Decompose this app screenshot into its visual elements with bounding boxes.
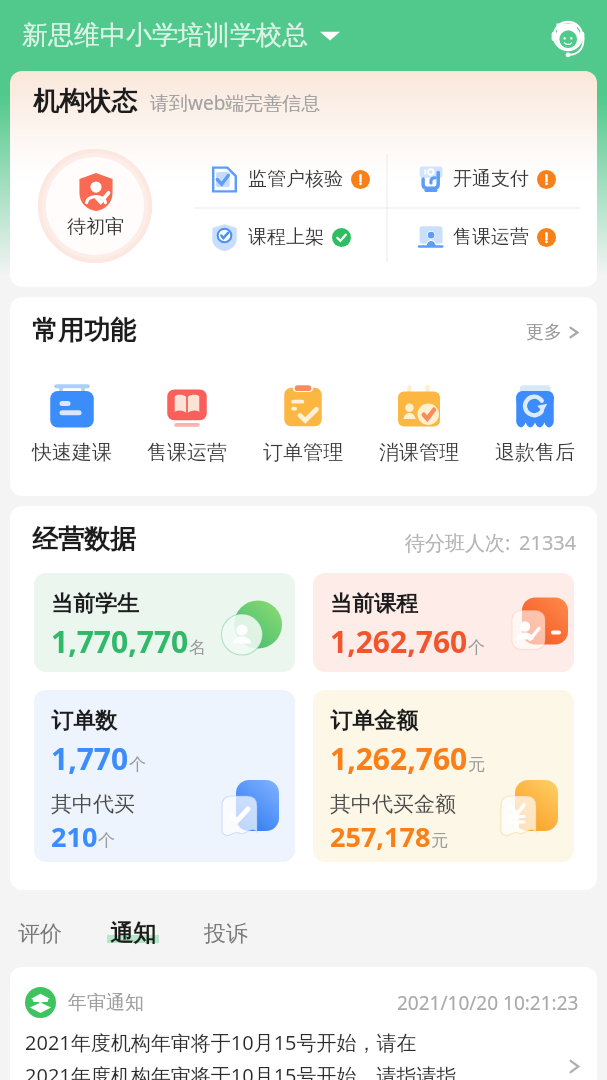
- button[interactable]: Customer service: [545, 13, 591, 59]
- staticText: 1,262,760: [330, 738, 468, 779]
- staticText: 其中代买: [51, 791, 135, 817]
- staticText: 元: [468, 754, 485, 775]
- staticText: 开通支付: [453, 167, 529, 191]
- staticText: 当前课程: [330, 590, 418, 618]
- staticText: 年审通知: [68, 991, 144, 1015]
- staticText: 通知: [110, 919, 156, 948]
- staticText: 快速建课: [32, 440, 112, 465]
- staticText: 请到web端完善信息: [150, 90, 321, 116]
- button[interactable]: 评价: [8, 908, 72, 960]
- button[interactable]: 通知: [97, 907, 169, 960]
- staticText: 210: [51, 818, 98, 855]
- staticText: 消课管理: [379, 440, 459, 465]
- button[interactable]: 退款售后: [477, 381, 593, 465]
- button[interactable]: 订单金额: [313, 690, 574, 862]
- staticText: 1,770: [51, 738, 129, 779]
- button[interactable]: 当前课程: [313, 573, 574, 672]
- staticText: 其中代买金额: [330, 791, 456, 817]
- staticText: 21334: [519, 529, 577, 556]
- staticText: 个: [468, 637, 485, 658]
- staticText: 订单金额: [330, 707, 418, 735]
- staticText: 监管户核验: [248, 167, 343, 191]
- staticText: 当前学生: [51, 590, 139, 618]
- staticText: 订单管理: [263, 440, 343, 465]
- staticText: 投诉: [204, 920, 248, 948]
- button[interactable]: 快速建课: [14, 381, 129, 465]
- staticText: 评价: [18, 920, 62, 948]
- staticText: 订单数: [51, 707, 117, 735]
- staticText: 个: [98, 830, 115, 851]
- button[interactable]: 待初审: [38, 149, 152, 263]
- staticText: 退款售后: [495, 440, 575, 465]
- staticText: 1,770,770: [51, 621, 189, 662]
- button[interactable]: 订单数: [34, 690, 295, 862]
- button[interactable]: 售课运营: [391, 208, 597, 266]
- staticText: 1,262,760: [330, 621, 468, 662]
- button[interactable]: 监管户核验: [186, 150, 391, 208]
- staticText: 机构状态: [33, 85, 137, 118]
- staticText: 经营数据: [32, 523, 136, 556]
- button[interactable]: 订单管理: [245, 381, 361, 465]
- staticText: 售课运营: [453, 225, 529, 249]
- staticText: 257,178: [330, 818, 431, 855]
- button[interactable]: 售课运营: [129, 381, 245, 465]
- staticText: 待初审: [67, 215, 124, 239]
- button[interactable]: 更多: [526, 319, 579, 342]
- staticText: 2021年度机构年审将于10月15号开始，请指请指: [25, 1062, 457, 1080]
- button[interactable]: 课程上架: [186, 208, 391, 266]
- button[interactable]: 年审通知: [10, 967, 597, 1080]
- button[interactable]: 投诉: [194, 908, 258, 960]
- staticText: 新思维中小学培训学校总: [22, 19, 308, 52]
- staticText: 待分班人次:: [405, 529, 511, 556]
- staticText: 2021年度机构年审将于10月15号开始，请在: [25, 1029, 417, 1056]
- staticText: 个: [129, 754, 146, 775]
- button[interactable]: 消课管理: [361, 381, 477, 465]
- staticText: 售课运营: [147, 440, 227, 465]
- staticText: 名: [189, 637, 206, 658]
- staticText: 常用功能: [32, 314, 136, 347]
- staticText: 更多: [526, 321, 562, 344]
- button[interactable]: 新思维中小学培训学校总: [22, 19, 340, 52]
- button[interactable]: 当前学生: [34, 573, 295, 672]
- staticText: 2021/10/20 10:21:23: [397, 990, 579, 1016]
- button[interactable]: 开通支付: [391, 150, 597, 208]
- staticText: 课程上架: [248, 225, 324, 249]
- staticText: 元: [431, 830, 448, 851]
